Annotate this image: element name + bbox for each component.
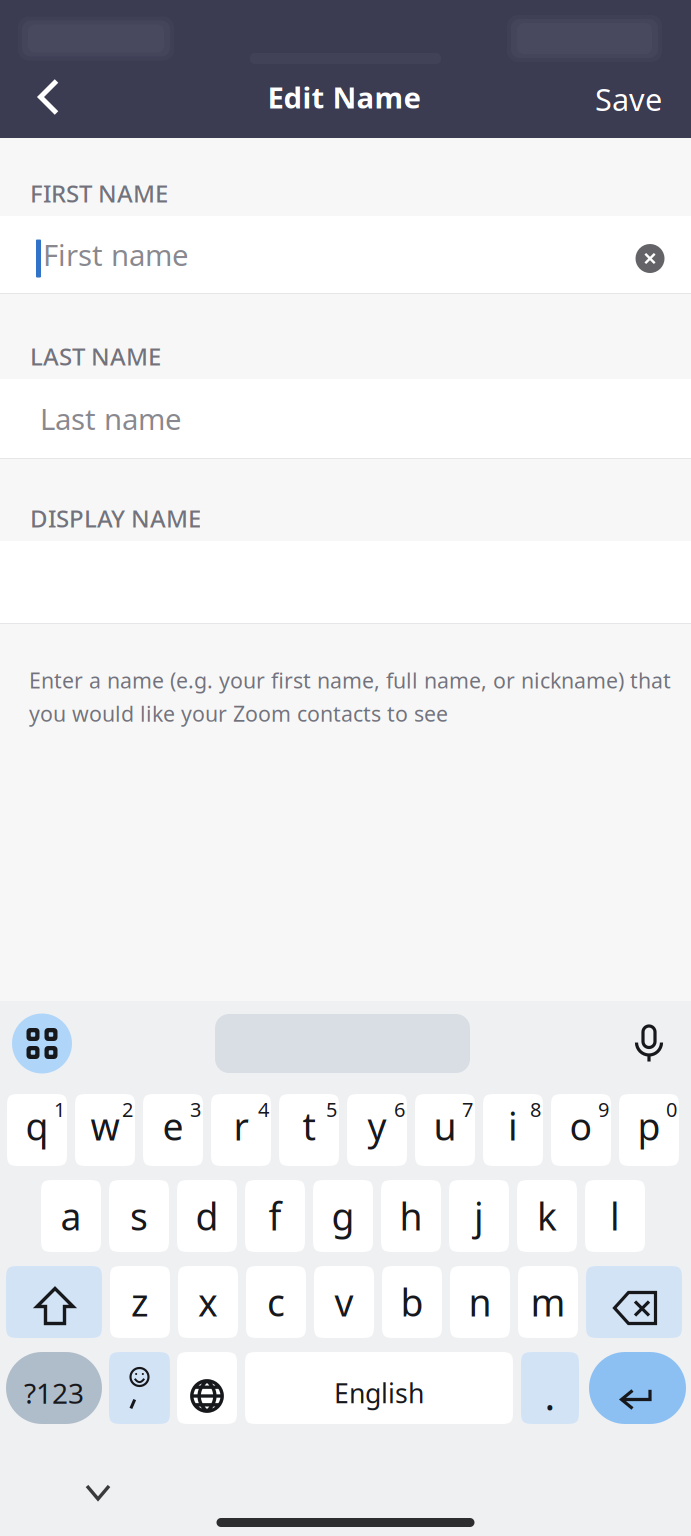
- button[interactable]: b: [382, 1266, 442, 1338]
- staticText: First name: [43, 235, 189, 274]
- staticText: Edit Name: [267, 77, 421, 116]
- button[interactable]: g: [313, 1180, 373, 1252]
- button[interactable]: Hide keyboard: [67, 1452, 129, 1508]
- staticText: u: [433, 1101, 456, 1151]
- staticText: s: [130, 1191, 148, 1241]
- staticText: t: [302, 1101, 315, 1151]
- staticText: a: [60, 1191, 81, 1241]
- staticText: o: [569, 1101, 592, 1151]
- button[interactable]: o: [551, 1094, 611, 1166]
- button[interactable]: m: [518, 1266, 578, 1338]
- staticText: 2: [122, 1096, 133, 1123]
- staticText: v: [334, 1277, 353, 1327]
- button[interactable]: Back: [0, 69, 59, 137]
- staticText: f: [268, 1191, 281, 1241]
- button[interactable]: Emoji: [109, 1352, 170, 1424]
- button[interactable]: s: [109, 1180, 169, 1252]
- button[interactable]: Save: [569, 69, 691, 137]
- button[interactable]: c: [246, 1266, 306, 1338]
- button[interactable]: Return: [589, 1352, 686, 1424]
- button[interactable]: h: [381, 1180, 441, 1252]
- staticText: FIRST NAME: [30, 177, 168, 209]
- button[interactable]: d: [177, 1180, 237, 1252]
- button[interactable]: p: [619, 1094, 679, 1166]
- staticText: 8: [530, 1096, 541, 1123]
- button[interactable]: Change language: [177, 1352, 237, 1424]
- staticText: LAST NAME: [30, 340, 161, 372]
- button[interactable]: Clear text: [612, 216, 682, 293]
- staticText: y: [367, 1101, 386, 1151]
- button[interactable]: x: [178, 1266, 238, 1338]
- button[interactable]: k: [517, 1180, 577, 1252]
- button[interactable]: Keyboard apps: [6, 1001, 78, 1086]
- staticText: 7: [462, 1096, 473, 1123]
- button[interactable]: z: [110, 1266, 170, 1338]
- staticText: z: [131, 1277, 149, 1327]
- button[interactable]: y: [347, 1094, 407, 1166]
- button[interactable]: Dictation: [619, 1001, 679, 1086]
- button[interactable]: v: [314, 1266, 374, 1338]
- staticText: 5: [326, 1096, 337, 1123]
- staticText: h: [399, 1191, 422, 1241]
- staticText: q: [25, 1101, 48, 1151]
- staticText: 3: [190, 1096, 201, 1123]
- button[interactable]: Space: [245, 1352, 513, 1424]
- staticText: DISPLAY NAME: [30, 502, 201, 534]
- button[interactable]: a: [41, 1180, 101, 1252]
- staticText: ?123: [24, 1374, 84, 1412]
- button[interactable]: f: [245, 1180, 305, 1252]
- staticText: w: [90, 1101, 119, 1151]
- button[interactable]: Shift: [6, 1266, 102, 1338]
- button[interactable]: l: [585, 1180, 645, 1252]
- button[interactable]: u: [415, 1094, 475, 1166]
- staticText: i: [508, 1101, 518, 1151]
- staticText: 6: [394, 1096, 405, 1123]
- button[interactable]: Period: [521, 1352, 579, 1424]
- staticText: .: [544, 1368, 555, 1421]
- button[interactable]: t: [279, 1094, 339, 1166]
- button[interactable]: e: [143, 1094, 203, 1166]
- staticText: Last name: [40, 399, 182, 438]
- staticText: 0: [666, 1096, 677, 1123]
- staticText: m: [530, 1277, 565, 1327]
- staticText: l: [610, 1191, 620, 1241]
- staticText: k: [537, 1191, 557, 1241]
- staticText: j: [474, 1191, 484, 1241]
- button[interactable]: r: [211, 1094, 271, 1166]
- staticText: Enter a name (e.g. your first name, full…: [29, 666, 671, 694]
- staticText: c: [267, 1277, 285, 1327]
- button[interactable]: w: [75, 1094, 135, 1166]
- button[interactable]: n: [450, 1266, 510, 1338]
- staticText: English: [334, 1375, 424, 1411]
- staticText: 4: [258, 1096, 269, 1123]
- staticText: you would like your Zoom contacts to see: [29, 699, 448, 728]
- button[interactable]: Delete: [586, 1266, 682, 1338]
- button[interactable]: Numbers and symbols: [6, 1352, 102, 1424]
- staticText: e: [162, 1101, 183, 1151]
- staticText: b: [400, 1277, 423, 1327]
- button[interactable]: q: [7, 1094, 67, 1166]
- staticText: g: [331, 1191, 354, 1241]
- staticText: p: [637, 1101, 660, 1151]
- staticText: r: [233, 1101, 248, 1151]
- staticText: Save: [595, 79, 662, 119]
- staticText: x: [198, 1277, 218, 1327]
- staticText: d: [195, 1191, 218, 1241]
- button[interactable]: i: [483, 1094, 543, 1166]
- button[interactable]: j: [449, 1180, 509, 1252]
- staticText: 1: [54, 1096, 65, 1123]
- staticText: 9: [598, 1096, 609, 1123]
- staticText: n: [468, 1277, 491, 1327]
